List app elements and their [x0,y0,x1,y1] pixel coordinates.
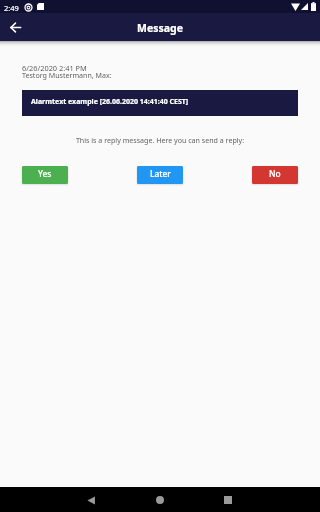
button[interactable]: Home [148,488,172,512]
button[interactable]: Later [137,166,183,184]
staticText: 6/26/2020 2:41 PM [22,63,87,73]
staticText: Yes [38,168,52,179]
button[interactable]: Yes [22,166,68,184]
staticText: Later [150,168,171,179]
staticText: 2:49 [4,3,19,13]
button[interactable]: No [252,166,298,184]
staticText: Message [137,21,183,35]
staticText: Testorg Mustermann, Max: [22,70,112,80]
staticText: This is a reply message. Here you can se… [22,135,298,145]
button[interactable]: Back [79,488,103,512]
staticText: No [269,168,281,179]
staticText: Alarmtext example [26.06.2020 14:41:40 C… [31,97,189,107]
button[interactable]: Back [5,17,26,38]
button[interactable]: Recents [216,488,240,512]
